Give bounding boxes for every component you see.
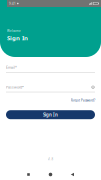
staticText: Forgot Password?	[71, 98, 95, 102]
staticText: Sign In	[7, 34, 28, 42]
staticText: Email*	[6, 65, 17, 70]
button[interactable]: Forgot Password?	[71, 98, 95, 102]
button[interactable]: Back	[61, 169, 83, 179]
staticText: v1.8	[47, 157, 53, 161]
button[interactable]: Home	[39, 169, 61, 179]
button[interactable]: Show password	[91, 85, 95, 89]
staticText: Password*	[6, 85, 24, 89]
staticText: Welcome	[7, 29, 21, 33]
staticText: Sign In	[43, 112, 58, 118]
staticText: 9:41	[9, 1, 16, 5]
button[interactable]: Sign In	[6, 110, 95, 119]
button[interactable]: Recent apps	[17, 169, 39, 179]
